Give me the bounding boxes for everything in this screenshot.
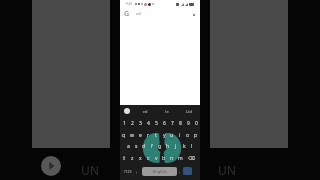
button[interactable]: 0 bbox=[192, 118, 200, 129]
button[interactable]: r bbox=[144, 130, 152, 141]
staticText: w bbox=[130, 132, 134, 139]
staticText: ⌫ bbox=[188, 155, 196, 161]
button[interactable]: o bbox=[184, 130, 192, 141]
staticText: 3 bbox=[139, 120, 142, 127]
button[interactable]: 4 bbox=[144, 118, 152, 129]
staticText: UN bbox=[81, 162, 100, 178]
staticText: p bbox=[194, 132, 198, 139]
staticText: , bbox=[136, 168, 138, 175]
button[interactable]: e bbox=[136, 130, 144, 141]
staticText: m bbox=[178, 155, 183, 162]
button[interactable]: f bbox=[148, 141, 156, 152]
staticText: 9:41 bbox=[126, 2, 133, 6]
button[interactable]: s bbox=[132, 141, 140, 152]
staticText: 4 bbox=[147, 120, 150, 127]
staticText: UN bbox=[218, 162, 237, 178]
button[interactable]: i bbox=[176, 130, 184, 141]
button[interactable]: x bbox=[136, 153, 144, 164]
button[interactable]: Enter bbox=[183, 167, 192, 175]
staticText: g bbox=[158, 143, 162, 150]
button[interactable]: Backspace bbox=[184, 152, 200, 164]
button[interactable]: ?123 bbox=[123, 164, 132, 178]
staticText: b bbox=[162, 155, 166, 162]
button[interactable]: 3 bbox=[136, 118, 144, 129]
button[interactable]: 6 bbox=[160, 118, 168, 129]
button[interactable]: 1 bbox=[120, 118, 128, 129]
staticText: a bbox=[127, 143, 130, 150]
staticText: x bbox=[139, 155, 142, 162]
staticText: 1 bbox=[123, 120, 126, 127]
button[interactable]: y bbox=[160, 130, 168, 141]
staticText: q bbox=[122, 132, 126, 139]
staticText: English bbox=[153, 169, 167, 174]
button[interactable]: More options bbox=[191, 12, 196, 17]
button[interactable]: c bbox=[144, 153, 152, 164]
staticText: 5 bbox=[155, 120, 158, 127]
button[interactable]: p bbox=[192, 130, 200, 141]
button[interactable]: q bbox=[120, 130, 128, 141]
button[interactable]: 8 bbox=[176, 118, 184, 129]
button[interactable]: g bbox=[156, 141, 164, 152]
staticText: l bbox=[191, 143, 193, 150]
button[interactable]: ed bbox=[134, 109, 156, 114]
button[interactable]: m bbox=[176, 153, 184, 164]
staticText: . bbox=[179, 168, 181, 175]
button[interactable]: le bbox=[156, 109, 178, 114]
button[interactable]: Period bbox=[177, 164, 183, 178]
button[interactable]: Comma bbox=[132, 164, 142, 178]
staticText: ?123 bbox=[124, 169, 132, 174]
staticText: c bbox=[147, 155, 150, 162]
staticText: u bbox=[170, 132, 174, 139]
staticText: y bbox=[163, 132, 166, 139]
button[interactable]: Voice input bbox=[120, 105, 134, 117]
staticText: G bbox=[124, 9, 130, 19]
button[interactable]: Space bbox=[142, 167, 177, 176]
button[interactable]: 9 bbox=[184, 118, 192, 129]
staticText: 2 bbox=[131, 120, 134, 127]
button[interactable]: 7 bbox=[168, 118, 176, 129]
staticText: e bbox=[139, 132, 142, 139]
staticText: z bbox=[131, 155, 134, 162]
staticText: t bbox=[155, 132, 157, 139]
button[interactable]: d bbox=[140, 141, 148, 152]
staticText: n bbox=[170, 155, 174, 162]
staticText: 9 bbox=[187, 120, 190, 127]
staticText: k bbox=[183, 143, 186, 150]
button[interactable]: G bbox=[124, 8, 196, 20]
button[interactable]: n bbox=[168, 153, 176, 164]
button[interactable]: h bbox=[164, 141, 172, 152]
button[interactable]: j bbox=[172, 141, 180, 152]
button[interactable]: z bbox=[128, 153, 136, 164]
staticText: 0 bbox=[195, 120, 198, 127]
button[interactable]: Shift bbox=[120, 152, 128, 164]
button[interactable]: 5 bbox=[152, 118, 160, 129]
staticText: ed bbox=[136, 11, 141, 17]
staticText: i bbox=[179, 132, 181, 139]
button[interactable]: Play bbox=[41, 156, 61, 176]
staticText: 7 bbox=[171, 120, 174, 127]
staticText: j bbox=[175, 143, 177, 150]
button[interactable]: l bbox=[188, 141, 196, 152]
staticText: h bbox=[166, 143, 170, 150]
staticText: ⇧ bbox=[122, 155, 127, 161]
button[interactable]: k bbox=[180, 141, 188, 152]
staticText: f bbox=[151, 143, 153, 150]
button[interactable]: t bbox=[152, 130, 160, 141]
staticText: 6 bbox=[163, 120, 166, 127]
button[interactable]: v bbox=[152, 153, 160, 164]
button[interactable]: Ltd bbox=[178, 109, 200, 114]
staticText: r bbox=[147, 132, 150, 139]
button[interactable]: 2 bbox=[128, 118, 136, 129]
staticText: 8 bbox=[179, 120, 182, 127]
staticText: s bbox=[135, 143, 138, 150]
button[interactable]: u bbox=[168, 130, 176, 141]
button[interactable]: b bbox=[160, 153, 168, 164]
staticText: v bbox=[155, 155, 158, 162]
button[interactable]: a bbox=[124, 141, 132, 152]
staticText: d bbox=[142, 143, 146, 150]
staticText: o bbox=[186, 132, 190, 139]
button[interactable]: w bbox=[128, 130, 136, 141]
